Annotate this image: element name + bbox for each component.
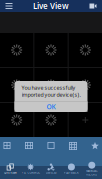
- button[interactable]: DEVICES: [41, 166, 61, 179]
- staticText: PLAYBACK: [64, 171, 79, 174]
- staticText: DEVICES: [46, 171, 56, 174]
- staticText: PTZ CONTROL: [22, 171, 40, 174]
- staticText: OK: [46, 102, 55, 111]
- button[interactable]: Record: [84, 0, 102, 12]
- button[interactable]: LIVE VIEW: [0, 166, 20, 179]
- button[interactable]: PLAYBACK: [61, 166, 82, 179]
- staticText: Live View: [33, 1, 69, 11]
- button[interactable]: 3 by 2 layout: [22, 137, 36, 166]
- button[interactable]: 3 by 3 layout: [66, 137, 80, 166]
- button[interactable]: Menu: [0, 0, 18, 12]
- button[interactable]: Favourites: [88, 137, 102, 166]
- button[interactable]: OK: [14, 102, 87, 112]
- button[interactable]: Single layout: [44, 137, 58, 166]
- button[interactable]: MANUAL RECORD: [82, 166, 102, 179]
- staticText: MANUAL RECORD: [86, 169, 97, 176]
- staticText: You have successfully imported your devi…: [21, 84, 80, 98]
- button[interactable]: PTZ CONTROL: [20, 166, 41, 179]
- button[interactable]: 2 by 2 layout: [0, 137, 14, 166]
- staticText: LIVE VIEW: [4, 171, 16, 174]
